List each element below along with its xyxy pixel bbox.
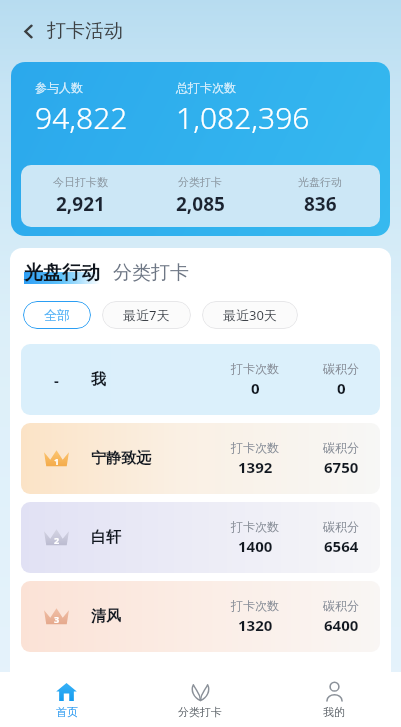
button[interactable]: 1 [21,423,380,494]
staticText: 光盘行动 [24,261,100,285]
staticText: 我的 [323,705,345,719]
staticText: 836 [304,191,337,217]
staticText: 0 [251,378,260,398]
button[interactable]: 2 [21,502,380,573]
button[interactable]: 光盘行动 [24,261,100,285]
staticText: 6564 [324,536,359,556]
staticText: 碳积分 [323,440,359,455]
button[interactable]: - [21,344,380,415]
staticText: 打卡次数 [231,361,279,376]
staticText: 碳积分 [323,361,359,376]
staticText: 1320 [238,615,273,635]
staticText: 1400 [238,536,273,556]
button[interactable]: 最近30天 [202,301,298,329]
staticText: 碳积分 [323,598,359,613]
staticText: 分类打卡 [178,175,222,189]
staticText: 94,822 [35,97,128,138]
staticText: 今日打卡数 [53,175,108,189]
staticText: 打卡次数 [231,440,279,455]
other: Category check-in [190,681,211,702]
staticText: - [54,370,59,390]
button[interactable]: Profile [267,672,401,727]
staticText: 我 [91,370,208,389]
button[interactable]: 全部 [23,301,91,329]
staticText: 光盘行动 [298,175,342,189]
button[interactable]: Back [12,15,44,47]
button[interactable]: Home [0,672,133,727]
staticText: 6750 [324,457,359,477]
staticText: 参与人数 [35,80,83,95]
button[interactable]: 3 [21,581,380,652]
staticText: 碳积分 [323,519,359,534]
staticText: 宁静致远 [91,449,208,468]
staticText: 最近30天 [223,306,277,324]
staticText: 6400 [324,615,359,635]
other: Profile [324,681,345,702]
staticText: 3 [54,613,60,625]
staticText: 2 [54,534,60,546]
staticText: 0 [337,378,346,398]
staticText: 分类打卡 [178,705,222,719]
staticText: 白轩 [91,528,208,547]
staticText: 2,085 [176,191,225,217]
staticText: 打卡活动 [47,19,123,43]
staticText: 全部 [44,307,70,323]
button[interactable]: 分类打卡 [113,261,189,285]
staticText: 清风 [91,607,208,626]
button[interactable]: 最近7天 [102,301,191,329]
staticText: 2,921 [56,191,105,217]
staticText: 打卡次数 [231,519,279,534]
staticText: 首页 [56,705,78,719]
staticText: 1,082,396 [176,97,310,138]
staticText: 分类打卡 [113,261,189,285]
staticText: 1 [54,455,60,467]
staticText: 总打卡次数 [176,80,236,95]
staticText: 1392 [238,457,273,477]
staticText: 打卡次数 [231,598,279,613]
other: Home [56,681,77,702]
button[interactable]: Category check-in [133,672,267,727]
staticText: 最近7天 [123,306,170,324]
